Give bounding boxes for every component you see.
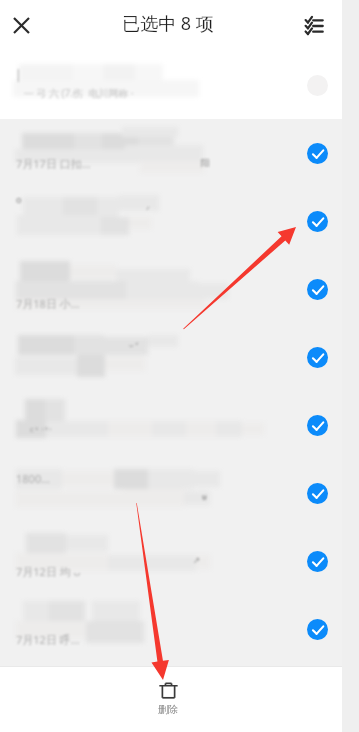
button[interactable]: 7月18日 小… <box>0 255 342 323</box>
button[interactable]: ᴗ ᵈ <box>0 323 342 391</box>
staticText: 7月18日 小… <box>16 296 80 311</box>
staticText: o <box>16 193 22 205</box>
button[interactable]: Select all <box>297 9 330 42</box>
staticText: 删除 <box>158 703 178 716</box>
button[interactable]: 1800… <box>0 459 342 527</box>
staticText: 7月12日 均 ᴗ <box>16 564 81 579</box>
staticText: ᐟ <box>146 205 150 215</box>
staticText: | <box>15 66 22 82</box>
button[interactable]: 删除 <box>132 667 204 728</box>
staticText: 已选中 8 项 <box>122 11 214 36</box>
button[interactable]: Close <box>5 9 38 42</box>
button[interactable]: 7月17日 口扣… <box>0 119 342 187</box>
button[interactable]: o <box>0 187 342 255</box>
staticText: ᴗ ᵈ <box>129 340 139 350</box>
button[interactable]: ᴄ ᵇ ᵎ ᵟ ᵎ <box>0 391 342 459</box>
staticText: ᴄ ᵇ ᵎ ᵟ ᵎ <box>30 425 51 435</box>
staticText: ᵾ <box>202 491 207 502</box>
staticText: 阳 <box>201 157 210 168</box>
staticText: 一 弓 六 (7.伤 电川网称 · <box>16 86 134 100</box>
staticText: 7月12日 呼… <box>16 632 80 647</box>
staticText: 7月17日 口扣… <box>16 156 91 171</box>
button[interactable]: 一 弓 六 (7.伤 电川网称 · <box>0 50 342 119</box>
button[interactable]: 7月12日 呼… <box>0 595 342 663</box>
staticText: ↗ <box>193 555 201 565</box>
staticText: 1800… <box>16 471 50 486</box>
button[interactable]: 7月12日 均 ᴗ <box>0 527 342 595</box>
